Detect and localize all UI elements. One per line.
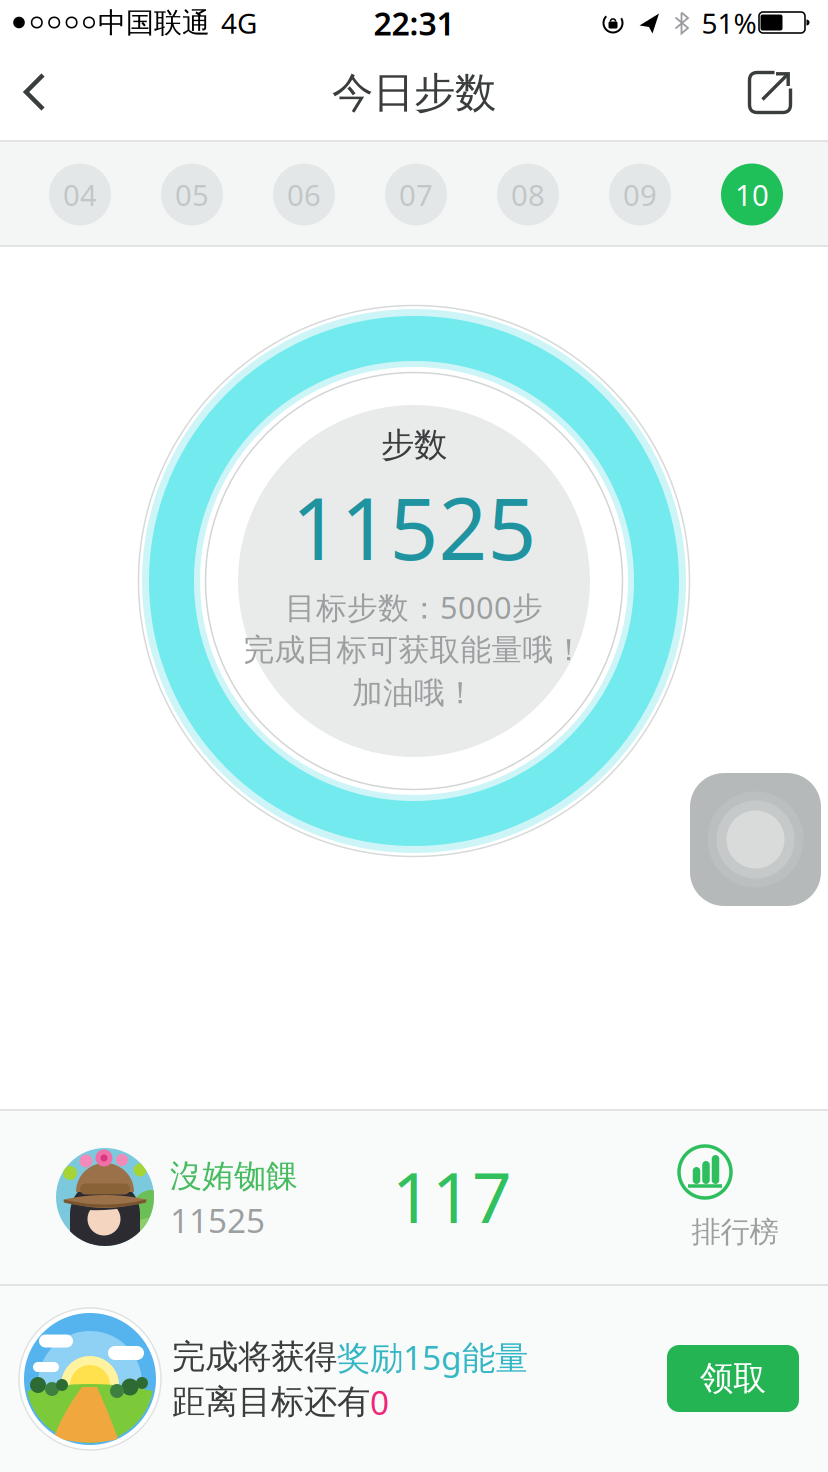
staticText: 04 — [63, 175, 97, 214]
staticText: 加油哦！ — [352, 674, 476, 712]
staticText: 09 — [623, 175, 657, 214]
button[interactable] — [748, 70, 792, 114]
button[interactable]: 09 — [609, 163, 671, 225]
button[interactable]: 07 — [385, 163, 447, 225]
staticText: 今日步数 — [332, 68, 496, 118]
staticText: 完成目标可获取能量哦！ — [243, 631, 584, 669]
button[interactable] — [19, 1308, 161, 1450]
staticText: 完成将获得 — [172, 1336, 337, 1377]
staticText: 领取 — [700, 1358, 766, 1399]
staticText: 11525 — [291, 470, 536, 584]
staticText: 10 — [735, 175, 769, 214]
staticText: 奖励15g能量 — [337, 1335, 528, 1379]
staticText: 117 — [392, 1150, 512, 1242]
staticText: 排行榜 — [691, 1214, 778, 1250]
staticText: 沒姷铷餜 — [170, 1156, 298, 1196]
button[interactable]: 05 — [161, 163, 223, 225]
button[interactable] — [21, 71, 65, 115]
staticText: 中国联通 — [98, 6, 210, 40]
staticText: 06 — [287, 175, 321, 214]
button[interactable]: 06 — [273, 163, 335, 225]
button[interactable] — [690, 773, 821, 906]
staticText: 08 — [511, 175, 545, 214]
staticText: 11525 — [170, 1198, 265, 1242]
staticText: 目标步数：5000步 — [285, 587, 543, 627]
button[interactable]: 10 — [721, 163, 783, 225]
staticText: 0 — [370, 1380, 389, 1424]
button[interactable] — [56, 1148, 154, 1246]
button[interactable]: 排行榜 — [653, 1122, 813, 1254]
staticText: 51% — [701, 4, 756, 42]
staticText: 05 — [175, 175, 209, 214]
staticText: 22:31 — [373, 2, 454, 44]
staticText: 步数 — [381, 424, 447, 465]
staticText: 距离目标还有 — [172, 1381, 370, 1422]
button[interactable]: 领取 — [667, 1345, 799, 1412]
button[interactable]: 04 — [49, 163, 111, 225]
button[interactable]: 08 — [497, 163, 559, 225]
staticText: 4G — [221, 4, 257, 42]
staticText: 07 — [399, 175, 433, 214]
